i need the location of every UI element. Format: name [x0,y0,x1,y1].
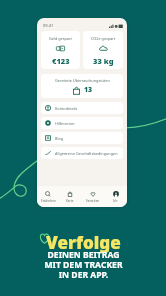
staticText: Hilfecenter [55,121,75,126]
button[interactable]: Geld gespart [41,31,80,69]
staticText: Allgemeine Geschäftsbedingungen [55,151,118,156]
button[interactable]: Allgemeine Geschäftsbedingungen [41,147,123,159]
button[interactable]: Kontodetails [41,102,123,114]
staticText: 33 kg [93,56,114,66]
button[interactable]: CO2e gespart [83,31,123,69]
staticText: Verfolge [46,231,121,254]
staticText: Blog [55,136,64,141]
staticText: Ich [113,199,118,203]
button[interactable]: Hilfecenter [41,117,123,129]
staticText: €123 [52,56,70,66]
staticText: 09:41 [43,23,54,28]
staticText: DEINEN BEITRAG MIT DEM TRACKER IN DER AP… [44,249,123,280]
staticText: CO2e gespart [91,36,116,41]
staticText: Gerettete Überraschungstüten [55,78,110,83]
staticText: Favoriten [86,199,100,203]
staticText: Kontodetails [55,106,78,111]
staticText: Karte [66,199,74,203]
staticText: Entdecken [41,199,56,203]
staticText: 13 [84,85,93,95]
staticText: Geld gespart [49,36,72,41]
button[interactable]: Ich [104,191,127,203]
button[interactable]: Entdecken [37,191,59,203]
button[interactable]: Karte [59,191,81,203]
button[interactable]: Gerettete Überraschungstüten [41,74,123,98]
button[interactable]: Blog [41,132,123,144]
button[interactable]: Favoriten [81,191,104,203]
